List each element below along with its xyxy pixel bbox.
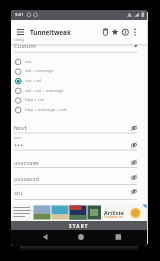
staticText: username xyxy=(14,159,39,166)
staticText: *** xyxy=(14,142,24,149)
button[interactable] xyxy=(13,140,145,151)
staticText: port xyxy=(14,136,22,140)
staticText: password xyxy=(14,175,39,182)
button[interactable] xyxy=(12,57,112,67)
button[interactable]: Artliste xyxy=(11,204,147,221)
staticText: ssh + message xyxy=(25,68,54,74)
staticText: http + message + ssh xyxy=(25,107,67,113)
button[interactable] xyxy=(110,24,120,40)
button[interactable] xyxy=(106,230,126,244)
button[interactable] xyxy=(12,66,112,76)
button[interactable] xyxy=(13,41,139,52)
button[interactable] xyxy=(12,76,112,86)
staticText: sni xyxy=(14,189,24,196)
button[interactable] xyxy=(120,24,130,40)
staticText: Tunneltweak xyxy=(30,28,71,37)
button[interactable] xyxy=(13,174,145,185)
button[interactable] xyxy=(130,24,140,40)
staticText: host xyxy=(14,124,28,132)
button[interactable] xyxy=(12,86,112,96)
button[interactable] xyxy=(35,230,55,244)
staticText: START xyxy=(69,223,89,229)
staticText: Artliste xyxy=(104,209,124,216)
staticText: The Artists list xyxy=(104,215,123,219)
button[interactable] xyxy=(12,47,112,57)
button[interactable] xyxy=(13,123,145,134)
staticText: 9:41 xyxy=(15,12,24,18)
button[interactable] xyxy=(11,23,29,41)
staticText: ssh + ssl xyxy=(25,78,42,84)
staticText: ssh + ssl + message xyxy=(25,88,64,94)
button[interactable] xyxy=(13,188,145,199)
staticText: ssh xyxy=(25,59,32,65)
staticText: http + ssh xyxy=(25,97,45,103)
button[interactable] xyxy=(99,24,110,40)
staticText: config xyxy=(14,37,24,42)
button[interactable] xyxy=(12,95,112,105)
staticText: Custom xyxy=(14,42,36,50)
button[interactable]: START xyxy=(11,221,147,230)
button[interactable] xyxy=(71,230,91,244)
button[interactable] xyxy=(13,158,145,169)
